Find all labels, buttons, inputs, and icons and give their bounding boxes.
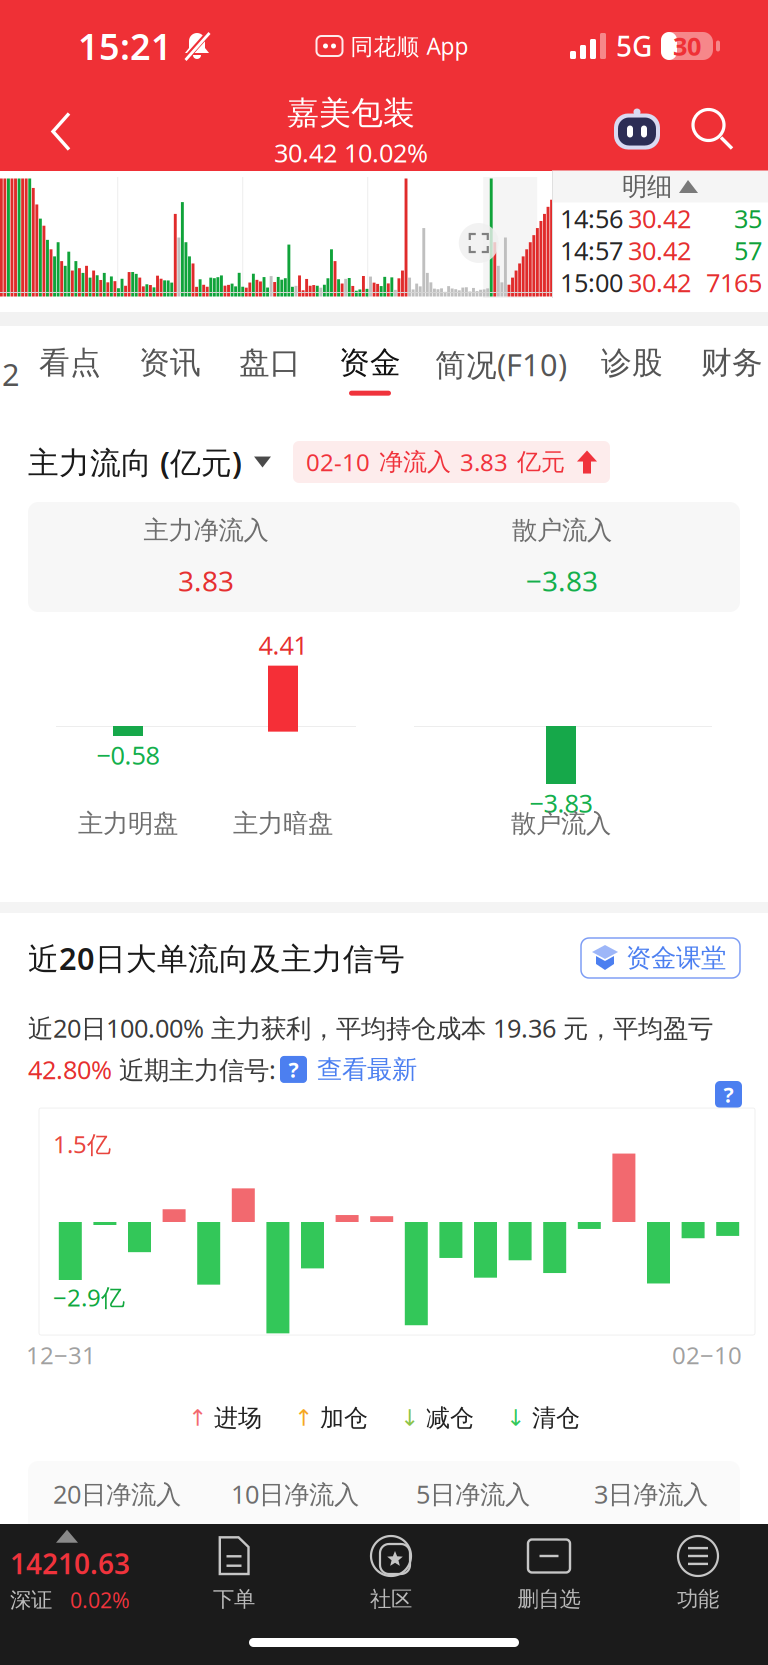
staticText: 散户流入 bbox=[511, 808, 611, 839]
staticText: 57 bbox=[734, 234, 762, 267]
staticText: 亿元 bbox=[517, 447, 565, 477]
button[interactable]: 下单 bbox=[156, 1524, 312, 1620]
staticText: 净流入 bbox=[379, 447, 451, 477]
staticText: 7165 bbox=[706, 266, 762, 299]
staticText: ↑ bbox=[188, 1405, 207, 1431]
staticText: 散户流入 bbox=[512, 515, 612, 546]
staticText: 减仓 bbox=[426, 1403, 474, 1433]
staticText: 3日净流入 bbox=[594, 1477, 708, 1511]
staticText: ? bbox=[288, 1055, 298, 1084]
staticText: 社区 bbox=[370, 1586, 412, 1612]
button[interactable]: 诊股 bbox=[582, 326, 682, 422]
button[interactable]: 资金课堂 bbox=[581, 938, 740, 978]
staticText: 30.42 bbox=[628, 202, 691, 235]
staticText: 资金课堂 bbox=[626, 942, 726, 973]
staticText: 功能 bbox=[677, 1586, 719, 1612]
button[interactable]: 资金 bbox=[320, 326, 420, 422]
staticText: −3.83 bbox=[529, 786, 592, 820]
staticText: ? bbox=[723, 1080, 733, 1109]
staticText: 14:57 bbox=[560, 234, 623, 267]
staticText: 15:00 bbox=[560, 266, 623, 299]
staticText: −3.83 bbox=[526, 562, 598, 599]
staticText: 资金 bbox=[339, 344, 401, 382]
staticText: 盘口 bbox=[239, 344, 301, 382]
staticText: 5日净流入 bbox=[416, 1477, 530, 1511]
staticText: 35 bbox=[734, 202, 762, 235]
staticText: −0.58 bbox=[96, 738, 159, 772]
button[interactable]: AI assistant bbox=[610, 104, 664, 158]
staticText: 看点 bbox=[39, 344, 101, 382]
staticText: 30.42 bbox=[628, 266, 691, 299]
staticText: 资讯 bbox=[139, 344, 201, 382]
staticText: 12−31 bbox=[26, 1339, 96, 1371]
staticText: 15:21 bbox=[78, 22, 172, 70]
staticText: 4.41 bbox=[258, 628, 307, 662]
button[interactable]: 财务 bbox=[682, 326, 768, 422]
button[interactable]: 看点 bbox=[20, 326, 120, 422]
staticText: ↓ bbox=[506, 1405, 525, 1431]
staticText: 2 bbox=[2, 354, 20, 394]
staticText: 查看最新 bbox=[317, 1054, 417, 1085]
staticText: 主力净流入 bbox=[143, 515, 268, 546]
staticText: 02-10 bbox=[306, 446, 370, 478]
button[interactable]: 社区 bbox=[312, 1524, 470, 1620]
button[interactable]: Back bbox=[28, 96, 92, 166]
staticText: 近20日大单流向及主力信号 bbox=[28, 938, 405, 978]
staticText: 简况(F10) bbox=[435, 344, 567, 385]
staticText: 3.83 bbox=[460, 446, 508, 478]
staticText: 加仓 bbox=[320, 1403, 368, 1433]
staticText: 同花顺 App bbox=[350, 31, 468, 61]
button[interactable]: Help bbox=[715, 1081, 742, 1108]
button[interactable]: 资讯 bbox=[120, 326, 220, 422]
staticText: 深证 bbox=[10, 1587, 52, 1613]
button[interactable]: Search bbox=[690, 106, 740, 156]
staticText: 5G bbox=[616, 27, 652, 65]
staticText: ↓ bbox=[400, 1405, 419, 1431]
staticText: 财务 bbox=[701, 344, 763, 382]
staticText: 进场 bbox=[214, 1403, 262, 1433]
staticText: 10日净流入 bbox=[231, 1477, 359, 1511]
staticText: 14:56 bbox=[560, 202, 623, 235]
button[interactable]: 简况(F10) bbox=[420, 326, 582, 422]
staticText: 20日净流入 bbox=[53, 1477, 181, 1511]
staticText: 下单 bbox=[213, 1586, 255, 1612]
staticText: ↑ bbox=[294, 1405, 313, 1431]
staticText: 42.80% bbox=[28, 1053, 112, 1086]
staticText: 主力流向 (亿元) bbox=[28, 442, 242, 482]
button[interactable]: 盘口 bbox=[220, 326, 320, 422]
staticText: 0.0亿 bbox=[612, 1525, 689, 1567]
staticText: 近期主力信号: bbox=[119, 1053, 276, 1086]
staticText: 14210.63 bbox=[10, 1545, 130, 1582]
staticText: 14.4亿 bbox=[69, 1525, 164, 1567]
staticText: 明细 bbox=[622, 171, 672, 202]
staticText: 1.5亿 bbox=[53, 1128, 111, 1160]
staticText: 主力暗盘 bbox=[233, 808, 333, 839]
staticText: 30.42 10.02% bbox=[274, 136, 428, 169]
staticText: 3.83 bbox=[178, 562, 234, 599]
staticText: 02−10 bbox=[672, 1339, 742, 1371]
staticText: 诊股 bbox=[601, 344, 663, 382]
staticText: −2.9亿 bbox=[53, 1281, 125, 1313]
staticText: 近20日100.00% 主力获利，平均持仓成本 19.36 元，平均盈亏 bbox=[28, 1011, 713, 1045]
staticText: 删自选 bbox=[517, 1586, 580, 1612]
staticText: 嘉美包装 bbox=[287, 93, 415, 133]
button[interactable]: 功能 bbox=[628, 1524, 768, 1620]
staticText: 0.02% bbox=[70, 1586, 130, 1614]
button[interactable]: 删自选 bbox=[470, 1524, 628, 1620]
staticText: 主力明盘 bbox=[78, 808, 178, 839]
staticText: 清仓 bbox=[532, 1403, 580, 1433]
staticText: 30.42 bbox=[628, 234, 691, 267]
staticText: 30 bbox=[673, 29, 701, 63]
